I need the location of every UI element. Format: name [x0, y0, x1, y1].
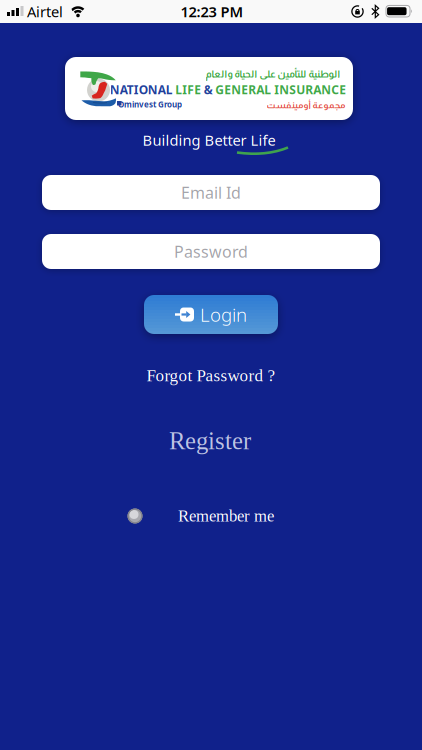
staticText: Remember me — [178, 507, 274, 525]
button[interactable]: Forgot Password ? — [146, 366, 275, 385]
button[interactable]: Password — [42, 234, 380, 269]
staticText: مجموعة أومينفست — [266, 100, 345, 110]
staticText: Airtel — [27, 2, 63, 21]
button[interactable]: Email Id — [42, 175, 380, 210]
staticText: Email Id — [181, 182, 241, 203]
staticText: & — [204, 81, 213, 97]
staticText: Login — [200, 302, 247, 327]
staticText: Register — [169, 427, 251, 455]
staticText: Building Better Life — [142, 130, 275, 150]
staticText: Forgot Password ? — [146, 366, 275, 385]
staticText: LIFE — [175, 81, 201, 97]
staticText: GENERAL INSURANCE — [215, 81, 346, 97]
staticText: Ominvest Group — [118, 99, 182, 110]
button[interactable]: Login — [144, 295, 278, 334]
button[interactable]: Remember me — [127, 503, 277, 529]
button[interactable]: Register — [169, 427, 251, 455]
staticText: Password — [174, 241, 248, 262]
staticText: 12:23 PM — [180, 2, 243, 21]
staticText: الوطنية للتأمين على الحياة والعام — [205, 68, 340, 79]
staticText: NATIONAL — [110, 81, 173, 97]
